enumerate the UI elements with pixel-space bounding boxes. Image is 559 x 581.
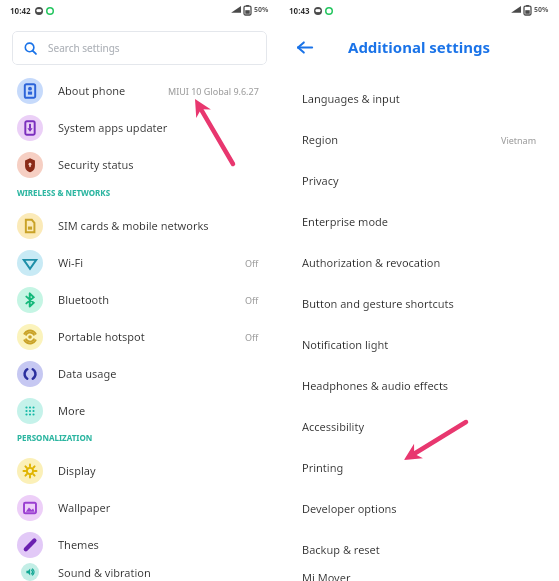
button[interactable]: Printing bbox=[279, 447, 559, 488]
staticText: PERSONALIZATION bbox=[17, 432, 93, 443]
staticText: Accessibility bbox=[302, 419, 365, 434]
staticText: WIRELESS & NETWORKS bbox=[17, 187, 111, 198]
staticText: Button and gesture shortcuts bbox=[302, 296, 454, 311]
staticText: Backup & reset bbox=[302, 542, 380, 557]
button[interactable]: Wallpaper bbox=[0, 489, 279, 526]
staticText: Privacy bbox=[302, 173, 339, 188]
staticText: Off bbox=[245, 257, 259, 269]
staticText: Authorization & revocation bbox=[302, 255, 441, 270]
button[interactable]: Wi-Fi bbox=[0, 244, 279, 281]
button[interactable]: Notification light bbox=[279, 324, 559, 365]
staticText: Additional settings bbox=[348, 37, 491, 57]
staticText: Off bbox=[245, 331, 259, 343]
staticText: Printing bbox=[302, 460, 344, 475]
staticText: Themes bbox=[58, 537, 99, 552]
button[interactable]: Display bbox=[0, 452, 279, 489]
button[interactable]: Enterprise mode bbox=[279, 201, 559, 242]
staticText: Enterprise mode bbox=[302, 214, 389, 229]
button[interactable]: SIM cards & mobile networks bbox=[0, 207, 279, 244]
button[interactable]: Search settings bbox=[12, 31, 267, 65]
button[interactable]: Sound & vibration bbox=[0, 563, 279, 581]
staticText: Off bbox=[245, 294, 259, 306]
staticText: Mi Mover bbox=[302, 570, 351, 581]
button[interactable]: Privacy bbox=[279, 160, 559, 201]
button[interactable]: Languages & input bbox=[279, 78, 559, 119]
button[interactable]: Themes bbox=[0, 526, 279, 563]
staticText: Wi-Fi bbox=[58, 255, 84, 270]
staticText: About phone bbox=[58, 83, 126, 98]
staticText: Display bbox=[58, 463, 96, 478]
staticText: More bbox=[58, 403, 86, 418]
staticText: Notification light bbox=[302, 337, 389, 352]
staticText: SIM cards & mobile networks bbox=[58, 218, 209, 233]
button[interactable]: Bluetooth bbox=[0, 281, 279, 318]
button[interactable]: Accessibility bbox=[279, 406, 559, 447]
staticText: 50% bbox=[534, 5, 549, 15]
staticText: Vietnam bbox=[501, 134, 537, 146]
staticText: 50% bbox=[254, 5, 269, 15]
button[interactable]: Headphones & audio effects bbox=[279, 365, 559, 406]
button[interactable]: Backup & reset bbox=[279, 529, 559, 570]
button[interactable]: Security status bbox=[0, 146, 279, 183]
button[interactable]: Back bbox=[289, 32, 319, 62]
staticText: 10:42 bbox=[10, 5, 31, 16]
button[interactable]: Portable hotspot bbox=[0, 318, 279, 355]
staticText: Headphones & audio effects bbox=[302, 378, 449, 393]
staticText: System apps updater bbox=[58, 120, 168, 135]
button[interactable]: Data usage bbox=[0, 355, 279, 392]
staticText: Bluetooth bbox=[58, 292, 110, 307]
staticText: Search settings bbox=[48, 41, 120, 55]
staticText: Wallpaper bbox=[58, 500, 111, 515]
staticText: Languages & input bbox=[302, 91, 400, 106]
staticText: Developer options bbox=[302, 501, 397, 516]
staticText: Data usage bbox=[58, 366, 117, 381]
staticText: MIUI 10 Global 9.6.27 bbox=[168, 85, 259, 97]
staticText: Portable hotspot bbox=[58, 329, 145, 344]
button[interactable]: Mi Mover bbox=[279, 570, 559, 581]
staticText: Security status bbox=[58, 157, 134, 172]
button[interactable]: About phone bbox=[0, 72, 279, 109]
button[interactable]: More bbox=[0, 392, 279, 429]
staticText: Sound & vibration bbox=[58, 565, 151, 580]
button[interactable]: System apps updater bbox=[0, 109, 279, 146]
button[interactable]: Authorization & revocation bbox=[279, 242, 559, 283]
button[interactable]: Button and gesture shortcuts bbox=[279, 283, 559, 324]
staticText: Region bbox=[302, 132, 339, 147]
button[interactable]: Region bbox=[279, 119, 559, 160]
button[interactable]: Developer options bbox=[279, 488, 559, 529]
staticText: 10:43 bbox=[289, 5, 310, 16]
